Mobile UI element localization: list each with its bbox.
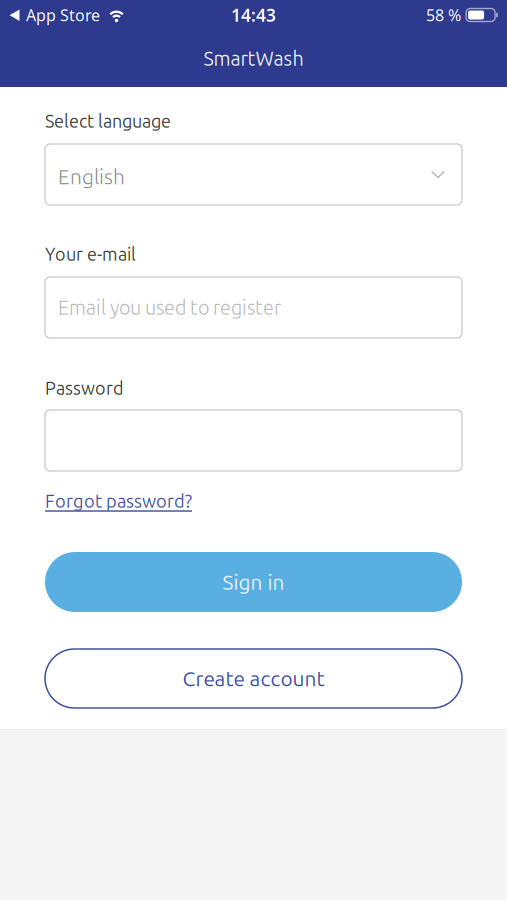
- button[interactable]: Sign in: [45, 552, 462, 612]
- staticText: Password: [45, 378, 124, 398]
- button[interactable]: Create account: [45, 649, 462, 708]
- button[interactable]: Password: [45, 410, 462, 471]
- button[interactable]: Select language: English: [45, 144, 462, 205]
- staticText: 14:43: [231, 3, 276, 26]
- button[interactable]: Your e-mail: [45, 277, 462, 338]
- staticText: Create account: [182, 667, 324, 690]
- button[interactable]: Back to App Store: [9, 4, 127, 26]
- staticText: Your e-mail: [45, 244, 136, 264]
- staticText: Select language: [45, 111, 171, 131]
- staticText: Sign in: [222, 570, 284, 594]
- staticText: Forgot password?: [45, 491, 192, 511]
- staticText: Email you used to register: [58, 296, 281, 318]
- staticText: App Store: [26, 4, 100, 26]
- button[interactable]: Forgot password?: [45, 489, 192, 513]
- staticText: English: [58, 165, 125, 188]
- staticText: SmartWash: [203, 47, 303, 69]
- staticText: 58 %: [426, 4, 461, 26]
